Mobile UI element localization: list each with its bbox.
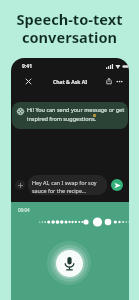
button[interactable]: More options (113, 75, 125, 87)
staticText: 00:04 (18, 207, 30, 213)
button[interactable]: Send (111, 179, 123, 191)
button[interactable]: Add attachment (15, 180, 25, 190)
button[interactable]: Share (103, 75, 115, 87)
button[interactable]: Record voice (56, 250, 83, 277)
staticText: Hi! You can send your message or get ins… (27, 106, 125, 123)
button[interactable]: Hey AI, can I swap for soy sauce for the… (28, 175, 107, 195)
staticText: 9:41 (22, 63, 32, 70)
button[interactable]: Close (22, 75, 34, 87)
staticText: Hey AI, can I swap for soy sauce for the… (32, 179, 97, 195)
staticText: Chat & Ask AI (53, 78, 88, 85)
staticText: Speech-to-text conversation (0, 9, 139, 48)
